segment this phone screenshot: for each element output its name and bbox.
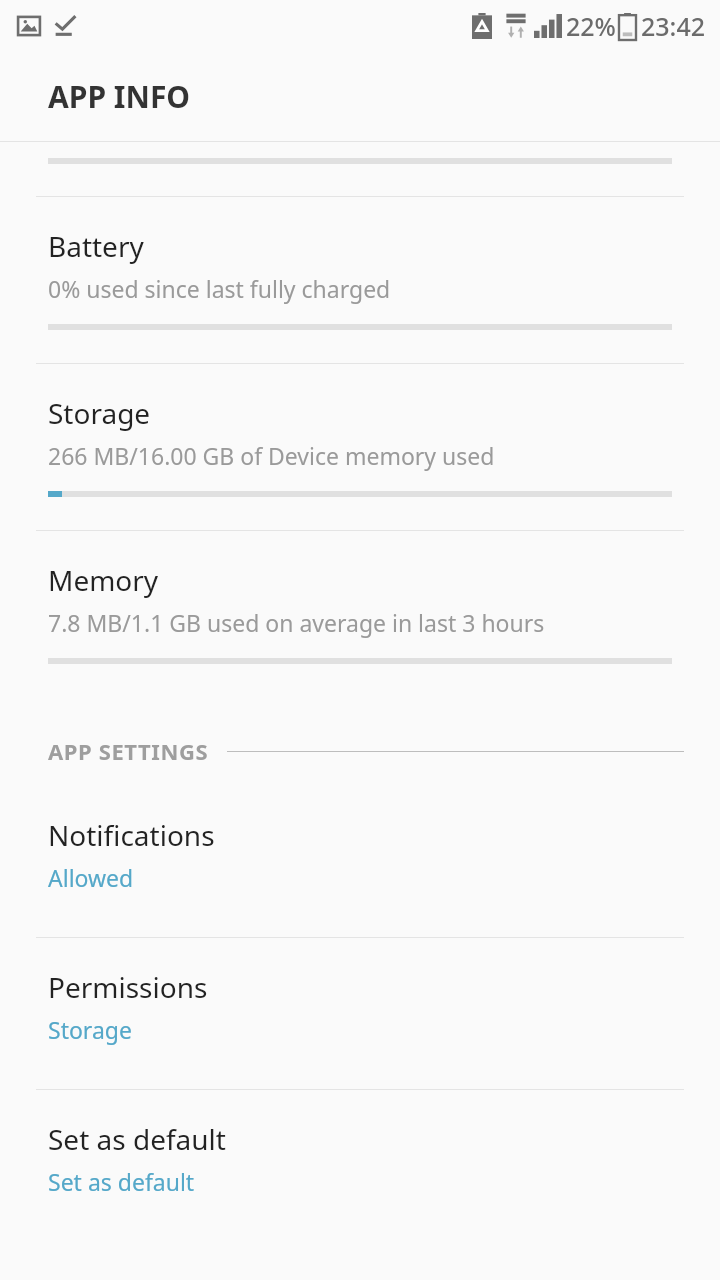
- button[interactable]: Memory: [0, 531, 720, 664]
- button[interactable]: Storage: [0, 364, 720, 530]
- button[interactable]: Permissions: [0, 938, 720, 1089]
- button[interactable]: Battery: [0, 197, 720, 363]
- staticText: APP SETTINGS: [48, 736, 209, 766]
- button[interactable]: Set as default: [0, 1090, 720, 1241]
- staticText: Permissions: [48, 968, 208, 1006]
- staticText: Storage: [48, 394, 151, 432]
- button[interactable]: Notifications: [0, 766, 720, 937]
- staticText: 22%: [566, 9, 616, 43]
- staticText: APP INFO: [48, 76, 191, 117]
- staticText: Set as default: [48, 1166, 195, 1197]
- staticText: 266 MB/16.00 GB of Device memory used: [48, 440, 495, 471]
- staticText: Notifications: [48, 816, 215, 854]
- staticText: Allowed: [48, 862, 134, 893]
- staticText: Battery: [48, 227, 144, 265]
- staticText: Storage: [48, 1014, 132, 1045]
- staticText: 0% used since last fully charged: [48, 273, 391, 304]
- staticText: 23:42: [641, 9, 706, 43]
- staticText: Set as default: [48, 1120, 226, 1158]
- staticText: Memory: [48, 561, 159, 599]
- staticText: 7.8 MB/1.1 GB used on average in last 3 …: [48, 607, 545, 638]
